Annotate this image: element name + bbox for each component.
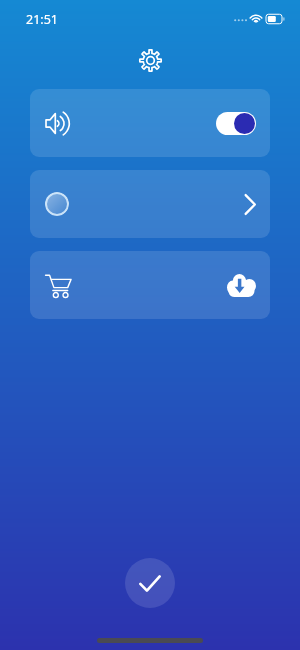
button[interactable]: Download [30,251,270,319]
button[interactable]: Open [236,189,256,219]
button[interactable]: Confirm [125,558,175,608]
button[interactable]: Toggle [216,112,256,135]
button[interactable]: Download [224,270,256,300]
button[interactable]: Toggle [30,89,270,157]
staticText: 21:51 [26,11,58,28]
button[interactable]: Settings [132,42,168,78]
button[interactable]: Open [30,170,270,238]
